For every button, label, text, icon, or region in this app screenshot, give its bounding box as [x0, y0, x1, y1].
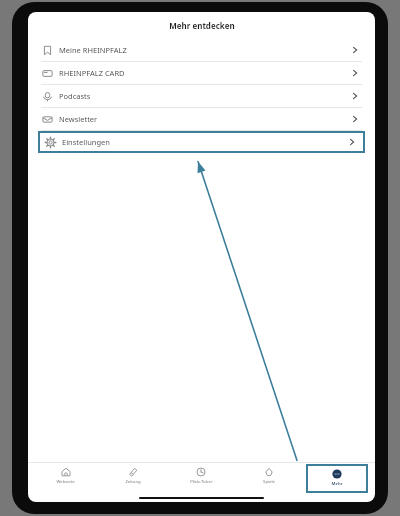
staticText: Zeitung [125, 479, 141, 485]
staticText: Pfalz-Ticker [190, 479, 213, 485]
staticText: Webseite [56, 479, 75, 485]
button[interactable]: RHEINPFALZ CARD [28, 62, 375, 84]
button[interactable]: Einstellungen [40, 133, 363, 151]
button[interactable]: Podcasts [28, 85, 375, 107]
staticText: Podcasts [59, 91, 91, 101]
button[interactable]: Pfalz-Ticker [170, 464, 232, 493]
button[interactable]: Mehr [308, 466, 366, 491]
button[interactable]: Meine RHEINPFALZ [28, 39, 375, 61]
staticText: Spiele [263, 479, 275, 485]
button[interactable]: Webseite [35, 464, 96, 493]
staticText: RHEINPFALZ CARD [59, 68, 125, 78]
staticText: Einstellungen [62, 137, 110, 147]
button[interactable]: Newsletter [28, 108, 375, 130]
staticText: Mehr entdecken [169, 20, 235, 31]
button[interactable]: Spiele [238, 464, 300, 493]
staticText: Newsletter [59, 114, 98, 124]
button[interactable]: Zeitung [102, 464, 164, 493]
staticText: Meine RHEINPFALZ [59, 45, 127, 55]
staticText: Mehr [331, 481, 343, 487]
